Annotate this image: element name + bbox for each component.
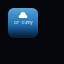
staticText: 23° Sunny <box>13 20 32 25</box>
